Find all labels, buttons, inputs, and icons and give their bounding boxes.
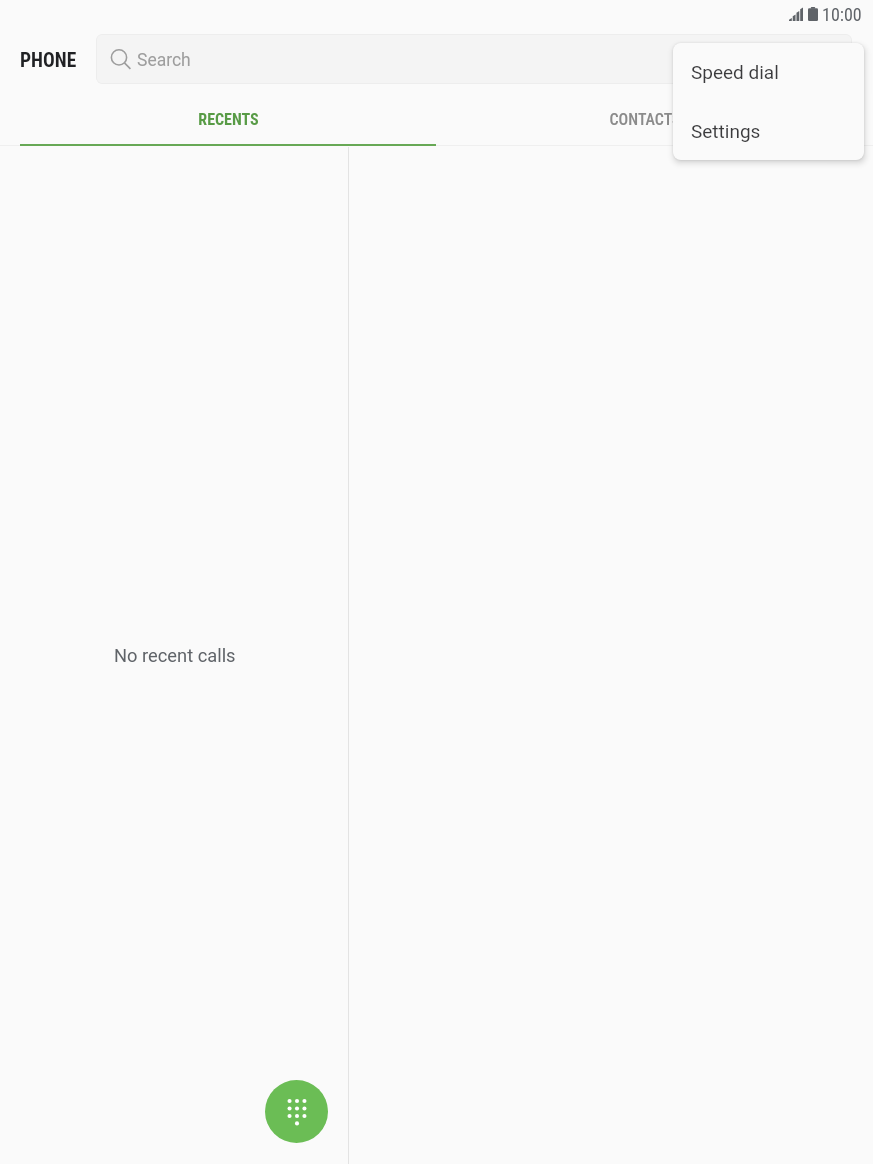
button[interactable]: RECENTS	[20, 90, 436, 147]
staticText: Settings	[691, 120, 761, 142]
button[interactable]: Speed dial	[673, 43, 864, 101]
staticText: Speed dial	[691, 61, 779, 83]
staticText: No recent calls	[114, 645, 236, 666]
button[interactable]: CONTACTS	[436, 90, 853, 147]
staticText: PHONE	[20, 49, 77, 72]
button[interactable]: Settings	[673, 101, 864, 160]
button[interactable]: Search	[96, 34, 852, 84]
staticText: RECENTS	[198, 110, 259, 129]
staticText: CONTACTS	[609, 110, 681, 129]
button[interactable]: Open dialpad	[265, 1080, 328, 1143]
staticText: 10:00	[822, 4, 862, 25]
staticText: Search	[137, 50, 191, 71]
